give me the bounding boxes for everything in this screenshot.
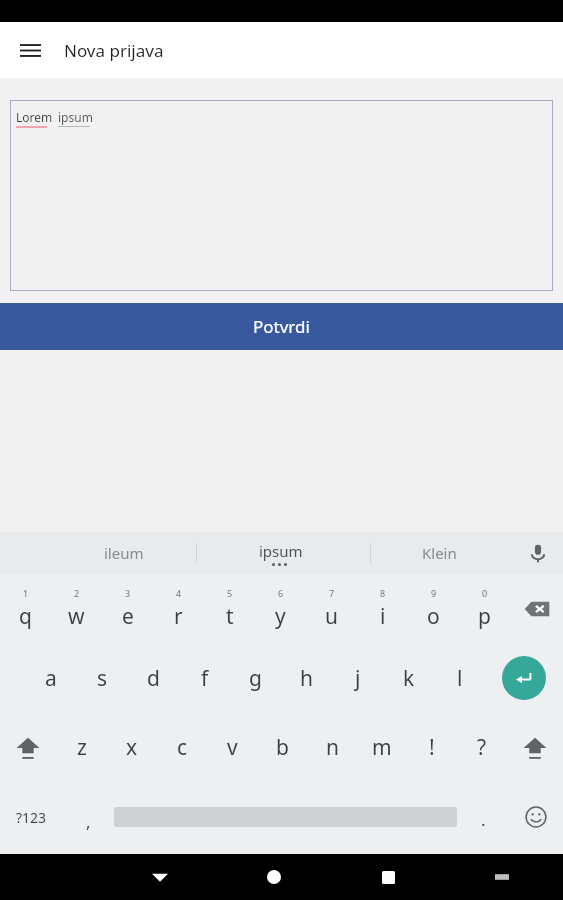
button[interactable]: ? <box>457 712 507 782</box>
staticText: ? <box>477 733 487 762</box>
button[interactable]: Space <box>114 782 457 852</box>
button[interactable]: 8 <box>357 574 408 644</box>
staticText: n <box>326 733 339 762</box>
button[interactable]: 2 <box>51 574 102 644</box>
button[interactable]: c <box>157 712 207 782</box>
button[interactable]: ?123 <box>0 782 62 852</box>
button[interactable]: Backspace <box>510 574 563 644</box>
staticText: w <box>68 602 85 631</box>
staticText: x <box>126 733 138 762</box>
staticText: p <box>478 602 491 631</box>
button[interactable]: l <box>434 644 485 712</box>
staticText: ipsum <box>58 109 93 125</box>
button[interactable]: Open navigation menu <box>6 26 54 74</box>
staticText: Potvrdi <box>253 315 310 338</box>
button[interactable]: Klein <box>383 532 495 574</box>
staticText: h <box>300 664 313 693</box>
staticText: , <box>86 810 91 833</box>
staticText: Nova prijava <box>64 39 164 62</box>
staticText: z <box>77 733 87 762</box>
staticText: Klein <box>422 543 457 563</box>
staticText: l <box>457 664 463 693</box>
staticText: 7 <box>329 587 335 599</box>
button[interactable]: h <box>281 644 332 712</box>
staticText: 6 <box>278 587 284 599</box>
staticText: e <box>122 602 134 631</box>
button[interactable]: f <box>179 644 230 712</box>
staticText: o <box>427 602 440 631</box>
staticText: 5 <box>227 587 233 599</box>
staticText: ! <box>429 733 435 762</box>
staticText: y <box>275 602 286 631</box>
button[interactable]: , <box>62 782 114 852</box>
staticText: i <box>380 602 386 631</box>
staticText: t <box>226 602 234 631</box>
staticText: r <box>174 602 183 631</box>
staticText: 3 <box>125 587 131 599</box>
staticText: ?123 <box>16 808 47 827</box>
button[interactable]: Change keyboard <box>445 854 559 900</box>
button[interactable]: j <box>332 644 383 712</box>
staticText: g <box>249 664 262 693</box>
button[interactable]: Recent apps <box>331 854 445 900</box>
button[interactable]: ipsum <box>225 532 337 574</box>
button[interactable]: 6 <box>255 574 306 644</box>
button[interactable]: 9 <box>408 574 459 644</box>
button[interactable]: 4 <box>153 574 204 644</box>
button[interactable]: a <box>25 644 77 712</box>
staticText: . <box>481 808 486 831</box>
staticText: v <box>227 733 238 762</box>
staticText: j <box>355 664 361 693</box>
staticText: 9 <box>431 587 437 599</box>
staticText: m <box>372 733 392 762</box>
staticText: 0 <box>482 587 488 599</box>
button[interactable]: Potvrdi <box>0 303 563 350</box>
button[interactable]: s <box>77 644 128 712</box>
button[interactable]: Voice input <box>513 532 563 574</box>
button[interactable]: n <box>307 712 357 782</box>
button[interactable]: Enter <box>485 644 563 712</box>
staticText: 4 <box>176 587 182 599</box>
button[interactable]: 5 <box>204 574 255 644</box>
button[interactable]: Shift <box>0 712 56 782</box>
staticText: b <box>276 733 289 762</box>
button[interactable]: d <box>128 644 179 712</box>
button[interactable]: Lorem <box>10 100 553 291</box>
staticText: ipsum <box>259 541 303 561</box>
staticText: Lorem <box>16 109 53 125</box>
staticText: a <box>45 664 57 693</box>
button[interactable]: 7 <box>306 574 357 644</box>
button[interactable]: 3 <box>102 574 153 644</box>
button[interactable]: 1 <box>0 574 51 644</box>
staticText: 1 <box>23 587 29 599</box>
button[interactable]: ! <box>407 712 457 782</box>
button[interactable]: x <box>107 712 157 782</box>
staticText: s <box>97 664 108 693</box>
staticText: 2 <box>74 587 80 599</box>
button[interactable]: Back <box>103 854 217 900</box>
button[interactable]: k <box>383 644 434 712</box>
staticText: 8 <box>380 587 386 599</box>
button[interactable]: Emoji <box>509 782 563 852</box>
staticText: c <box>177 733 188 762</box>
button[interactable]: ileum <box>68 532 180 574</box>
staticText: u <box>325 602 338 631</box>
staticText: k <box>403 664 415 693</box>
staticText: f <box>201 664 209 693</box>
staticText: q <box>19 602 32 631</box>
button[interactable]: 0 <box>459 574 510 644</box>
button[interactable]: z <box>56 712 107 782</box>
button[interactable]: m <box>357 712 407 782</box>
button[interactable]: b <box>257 712 307 782</box>
button[interactable]: g <box>230 644 281 712</box>
button[interactable]: Shift <box>507 712 563 782</box>
button[interactable]: Home <box>217 854 331 900</box>
staticText: ileum <box>104 543 144 563</box>
staticText: d <box>147 664 160 693</box>
button[interactable]: v <box>207 712 257 782</box>
button[interactable]: . <box>457 782 509 852</box>
